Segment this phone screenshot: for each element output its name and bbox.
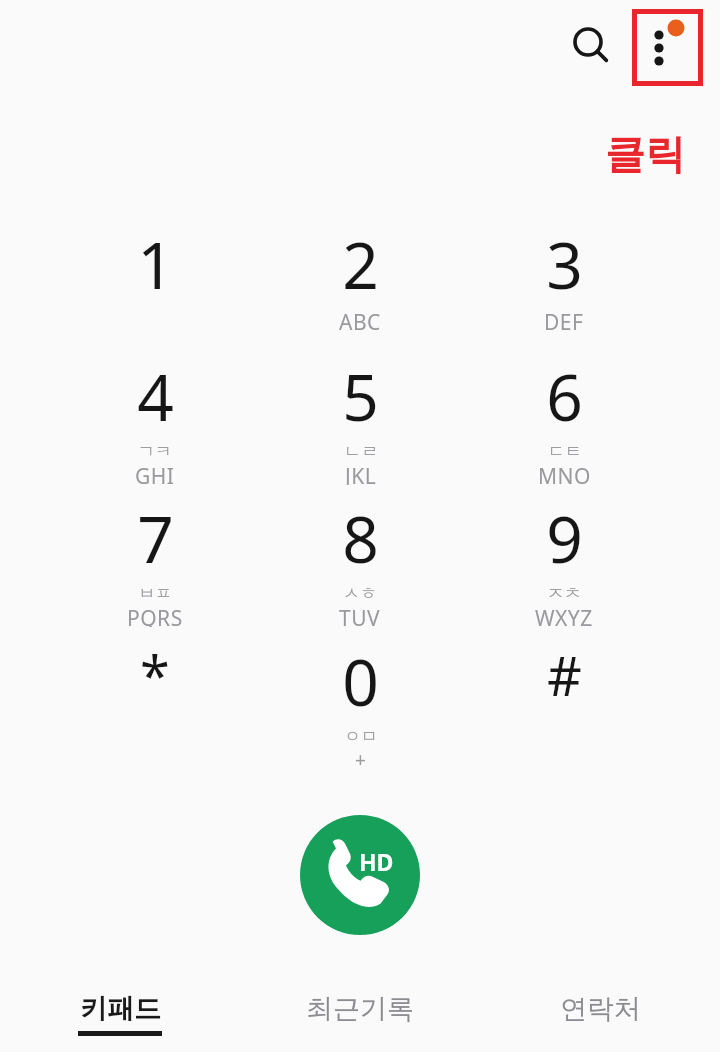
staticText: # <box>547 638 582 712</box>
staticText: ㅈㅊ <box>547 583 581 604</box>
button[interactable]: 1 <box>67 221 243 353</box>
staticText: GHI <box>135 462 175 485</box>
staticText: ㅇㅁ <box>344 726 378 747</box>
staticText: 8 <box>342 495 379 582</box>
button[interactable]: 8 <box>272 495 448 627</box>
staticText: PQRS <box>127 604 183 627</box>
button[interactable]: Search <box>560 15 620 75</box>
staticText: JKL <box>345 462 377 485</box>
staticText: MNO <box>538 462 591 485</box>
staticText: WXYZ <box>535 604 593 627</box>
staticText: 7 <box>137 495 174 582</box>
staticText: * <box>140 638 170 712</box>
button[interactable]: Call <box>300 815 420 935</box>
button[interactable]: 4 <box>67 353 243 485</box>
button[interactable]: 2 <box>272 221 448 353</box>
staticText: ABC <box>339 308 381 337</box>
staticText: TUV <box>339 604 381 627</box>
button[interactable]: 0 <box>272 638 448 770</box>
staticText: 연락처 <box>560 992 641 1026</box>
staticText: DEF <box>544 308 584 337</box>
staticText: 2 <box>342 221 379 308</box>
staticText: 클릭 <box>605 129 685 179</box>
staticText: ㅅㅎ <box>343 583 377 604</box>
button[interactable]: # <box>476 638 652 770</box>
button[interactable]: 7 <box>67 495 243 627</box>
button[interactable]: 최근기록 <box>240 980 480 1052</box>
button[interactable]: 연락처 <box>480 980 720 1052</box>
staticText: 9 <box>546 495 583 582</box>
staticText: 5 <box>342 353 379 440</box>
staticText: ㄴㄹ <box>344 441 378 462</box>
staticText: 3 <box>546 221 583 308</box>
staticText: 0 <box>342 638 379 725</box>
button[interactable]: 3 <box>476 221 652 353</box>
staticText: 1 <box>137 221 174 308</box>
staticText: ㄷㅌ <box>548 441 582 462</box>
button[interactable]: More options <box>632 9 703 86</box>
button[interactable]: 9 <box>476 495 652 627</box>
staticText: 4 <box>137 353 174 440</box>
staticText: + <box>355 747 366 770</box>
staticText: 최근기록 <box>306 992 414 1026</box>
button[interactable]: 5 <box>272 353 448 485</box>
button[interactable]: 6 <box>476 353 652 485</box>
staticText: HD <box>359 846 394 877</box>
staticText: 키패드 <box>80 992 161 1026</box>
staticText: 6 <box>546 353 583 440</box>
button[interactable]: 키패드 <box>0 980 240 1052</box>
staticText: ㅂㅍ <box>138 583 172 604</box>
button[interactable]: * <box>67 638 243 770</box>
staticText: ㄱㅋ <box>138 441 172 462</box>
